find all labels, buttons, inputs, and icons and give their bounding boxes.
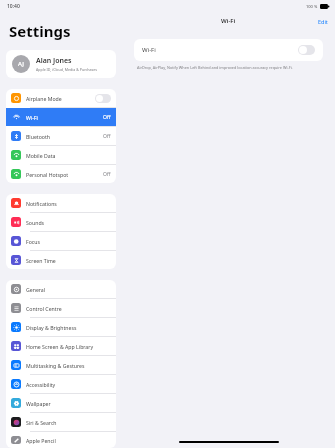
button[interactable]: Wallpaper: [6, 394, 116, 412]
staticText: Sounds: [26, 219, 111, 226]
staticText: Wi-Fi: [26, 114, 103, 121]
staticText: Apple ID, iCloud, Media & Purchases: [36, 67, 98, 72]
button[interactable]: Screen Time: [6, 251, 116, 269]
staticText: AirDrop, AirPlay, Notify When Left Behin…: [137, 65, 293, 70]
button[interactable]: Mobile Data: [6, 146, 116, 164]
button[interactable]: Display & Brightness: [6, 318, 116, 336]
staticText: Settings: [9, 21, 71, 41]
staticText: AJ: [18, 60, 24, 68]
button[interactable]: Apple Pencil: [6, 432, 116, 448]
staticText: Mobile Data: [26, 152, 111, 159]
staticText: Control Centre: [26, 305, 111, 312]
button[interactable]: Airplane Mode: [6, 89, 116, 107]
staticText: Bluetooth: [26, 133, 103, 140]
staticText: Wi-Fi: [142, 46, 156, 54]
staticText: Airplane Mode: [26, 95, 95, 102]
staticText: Focus: [26, 238, 111, 245]
staticText: Siri & Search: [26, 419, 111, 426]
staticText: 100 %: [306, 4, 318, 9]
staticText: Wi-Fi: [221, 17, 236, 25]
button[interactable]: Edit: [318, 18, 328, 25]
staticText: Screen Time: [26, 257, 111, 264]
button[interactable]: Wi-Fi: [6, 108, 116, 126]
button[interactable]: Wi-Fi: [134, 39, 323, 61]
staticText: Wallpaper: [26, 400, 111, 407]
button[interactable]: Accessibility: [6, 375, 116, 393]
staticText: Alan Jones: [36, 56, 72, 66]
staticText: 10:40: [7, 3, 20, 10]
staticText: Accessibility: [26, 381, 111, 388]
staticText: Off: [103, 171, 111, 178]
staticText: Apple Pencil: [26, 437, 111, 444]
button[interactable]: Focus: [6, 232, 116, 250]
staticText: General: [26, 286, 111, 293]
staticText: Display & Brightness: [26, 324, 111, 331]
button[interactable]: Home Screen & App Library: [6, 337, 116, 355]
other: Wi-Fi toggle: [299, 46, 314, 54]
staticText: Edit: [318, 18, 328, 25]
button[interactable]: Multitasking & Gestures: [6, 356, 116, 374]
staticText: Off: [103, 114, 111, 121]
button[interactable]: Control Centre: [6, 299, 116, 317]
button[interactable]: AJ: [6, 50, 116, 78]
staticText: Personal Hotspot: [26, 171, 103, 178]
staticText: Notifications: [26, 200, 111, 207]
staticText: Home Screen & App Library: [26, 343, 111, 350]
button[interactable]: Siri & Search: [6, 413, 116, 431]
staticText: Off: [103, 133, 111, 140]
button[interactable]: Personal Hotspot: [6, 165, 116, 183]
button[interactable]: General: [6, 280, 116, 298]
button[interactable]: Bluetooth: [6, 127, 116, 145]
staticText: Multitasking & Gestures: [26, 362, 111, 369]
button[interactable]: Notifications: [6, 194, 116, 212]
button[interactable]: Sounds: [6, 213, 116, 231]
